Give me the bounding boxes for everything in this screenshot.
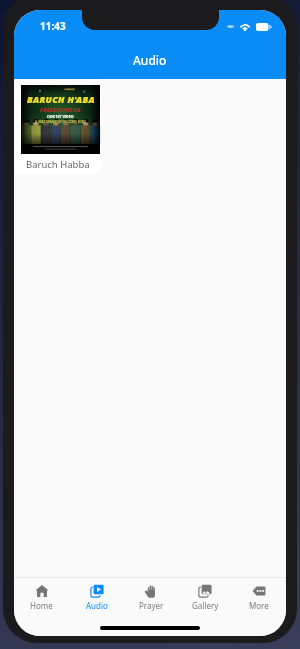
button[interactable]: More xyxy=(232,578,286,613)
staticText: Baruch Habba xyxy=(26,158,90,171)
staticText: Audio xyxy=(86,600,108,611)
button[interactable]: Prayer xyxy=(124,578,178,613)
staticText: BARUCH H'ABA xyxy=(27,93,95,105)
button[interactable]: Audio xyxy=(69,578,124,613)
button[interactable]: Gallery xyxy=(178,578,232,613)
button[interactable]: Home xyxy=(14,578,69,613)
staticText: A HEARTWARMING WELCOME SONG xyxy=(35,120,87,124)
staticText: OUR 1ST VIDEO xyxy=(47,114,74,119)
staticText: Home xyxy=(30,600,53,611)
staticText: Prayer xyxy=(139,600,164,611)
staticText: More xyxy=(249,600,269,611)
staticText: PRESENTATION xyxy=(40,106,81,113)
staticText: 11:43 xyxy=(40,19,66,33)
staticText: Audio xyxy=(133,52,167,68)
staticText: Gallery xyxy=(192,600,219,611)
button[interactable]: BARUCH H'ABA xyxy=(15,79,101,174)
